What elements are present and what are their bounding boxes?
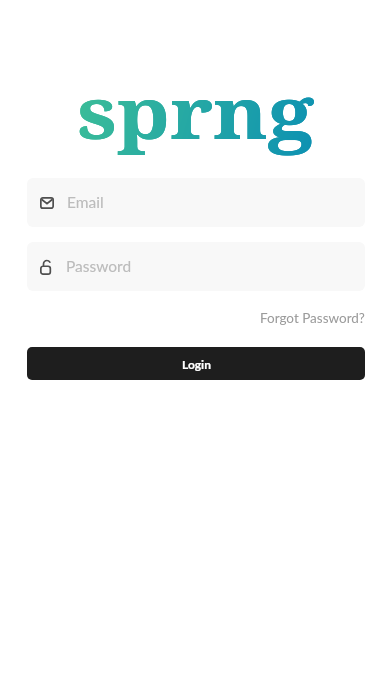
staticText: sprng [77, 64, 315, 160]
other: Email [40, 197, 54, 209]
staticText: Login [182, 357, 211, 371]
other: Password [40, 259, 53, 275]
staticText: Password [66, 257, 132, 276]
button[interactable]: Login [27, 347, 365, 380]
staticText: Forgot Password? [260, 310, 365, 326]
button[interactable]: Password [27, 242, 365, 291]
staticText: sprng [77, 64, 315, 160]
button[interactable]: Email [27, 178, 365, 227]
button[interactable]: Forgot Password? [260, 306, 365, 330]
staticText: Email [67, 193, 104, 212]
